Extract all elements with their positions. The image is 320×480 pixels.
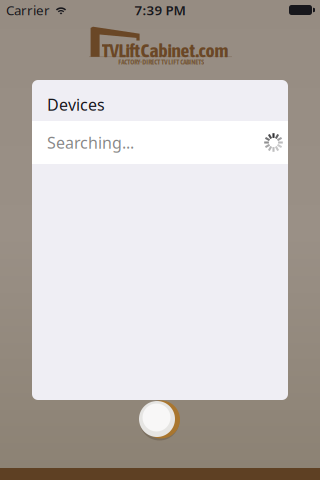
staticText: Carrier <box>6 1 50 19</box>
staticText: 7:39 PM <box>134 1 185 19</box>
button[interactable]: Searching... <box>32 121 288 164</box>
staticText: TVLiftCabinet.com <box>101 39 228 61</box>
staticText: Devices <box>47 94 105 115</box>
staticText: FACTORY-DIRECT TV LIFT CABINETS <box>118 58 204 66</box>
staticText: Searching... <box>47 132 134 153</box>
